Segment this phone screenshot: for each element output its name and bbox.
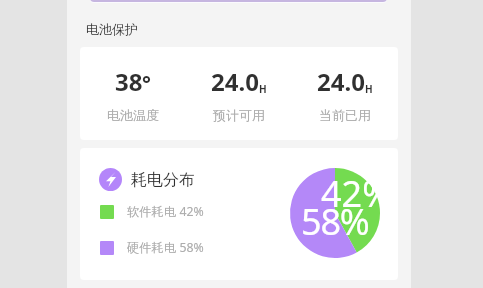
staticText: 42% (321, 169, 393, 218)
staticText: 24.0 (317, 65, 365, 98)
staticText: 预计可用 (213, 107, 265, 123)
staticText: 耗电分布 (131, 170, 195, 190)
staticText: ° (142, 69, 151, 98)
button[interactable]: 38 (80, 47, 398, 140)
staticText: 软件耗电 42% (127, 203, 204, 220)
staticText: 硬件耗电 58% (127, 239, 204, 256)
staticText: 38 (115, 65, 143, 98)
staticText: 24.0 (211, 65, 259, 98)
staticText: 电池温度 (107, 107, 159, 123)
staticText: H (259, 82, 267, 96)
staticText: 电池保护 (86, 21, 138, 37)
staticText: 58% (301, 197, 369, 246)
staticText: H (365, 82, 373, 96)
staticText: 当前已用 (319, 107, 371, 123)
button[interactable]: 耗电分布 (80, 148, 398, 280)
